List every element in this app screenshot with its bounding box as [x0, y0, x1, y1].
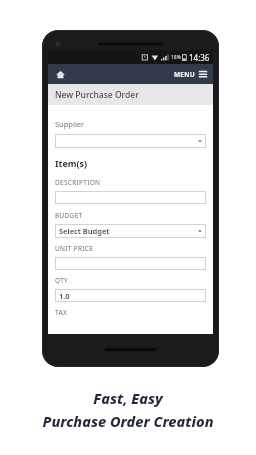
staticText: Select Budget — [59, 226, 110, 236]
staticText: 14:36 — [189, 52, 210, 63]
staticText: 1.0 — [59, 291, 70, 301]
button[interactable]: 1.0 — [55, 289, 206, 302]
staticText: UNIT PRICE — [55, 244, 94, 253]
staticText: New Purchase Order — [55, 89, 139, 101]
button[interactable]: MENU — [173, 67, 209, 81]
staticText: 18% — [171, 54, 181, 61]
other: Open menu — [198, 69, 208, 79]
staticText: BUDGET — [55, 211, 83, 220]
button[interactable] — [55, 134, 206, 148]
button[interactable]: Home — [53, 67, 67, 81]
staticText: Item(s) — [55, 157, 88, 169]
button[interactable]: Select Budget — [55, 224, 206, 238]
staticText: Fast, Easy — [93, 388, 163, 408]
staticText: TAX — [55, 308, 68, 317]
staticText: DESCRIPTION — [55, 178, 101, 187]
staticText: MENU — [174, 70, 195, 79]
button[interactable] — [55, 257, 206, 270]
button[interactable] — [55, 191, 206, 204]
staticText: Supplier — [55, 119, 85, 129]
staticText: Purchase Order Creation — [42, 411, 214, 431]
staticText: QTY — [55, 276, 69, 285]
